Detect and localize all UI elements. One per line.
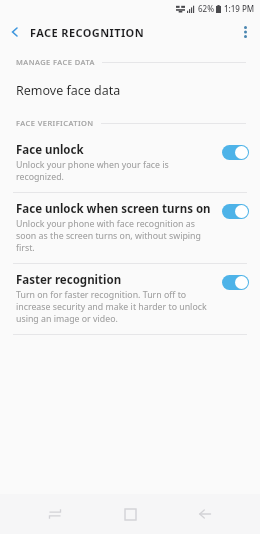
staticText: 62% bbox=[198, 3, 214, 14]
button[interactable]: Toggle bbox=[222, 275, 249, 290]
staticText: FACE VERIFICATION bbox=[16, 118, 94, 128]
button[interactable]: Home bbox=[110, 494, 150, 534]
staticText: Unlock your phone when your face is reco… bbox=[16, 159, 212, 183]
staticText: Face unlock bbox=[16, 142, 84, 158]
staticText: FACE RECOGNITION bbox=[30, 25, 145, 40]
staticText: Unlock your phone with face recognition … bbox=[16, 218, 212, 254]
staticText: MANAGE FACE DATA bbox=[16, 57, 95, 67]
button[interactable]: Toggle bbox=[222, 145, 249, 160]
button[interactable]: Faster recognition bbox=[0, 264, 260, 334]
staticText: Faster recognition bbox=[16, 272, 122, 288]
staticText: Remove face data bbox=[16, 82, 121, 99]
button[interactable]: Recents bbox=[35, 494, 75, 534]
button[interactable]: Remove face data bbox=[0, 74, 260, 107]
button[interactable]: Face unlock when screen turns on bbox=[0, 193, 260, 263]
staticText: 1:19 PM bbox=[224, 3, 255, 14]
button[interactable]: Back bbox=[185, 494, 225, 534]
button[interactable]: Face unlock bbox=[0, 134, 260, 192]
staticText: Turn on for faster recognition. Turn off… bbox=[16, 289, 212, 325]
button[interactable]: More options bbox=[230, 17, 260, 47]
staticText: Face unlock when screen turns on bbox=[16, 201, 211, 217]
button[interactable]: Back bbox=[0, 17, 30, 47]
button[interactable]: Toggle bbox=[222, 204, 249, 219]
